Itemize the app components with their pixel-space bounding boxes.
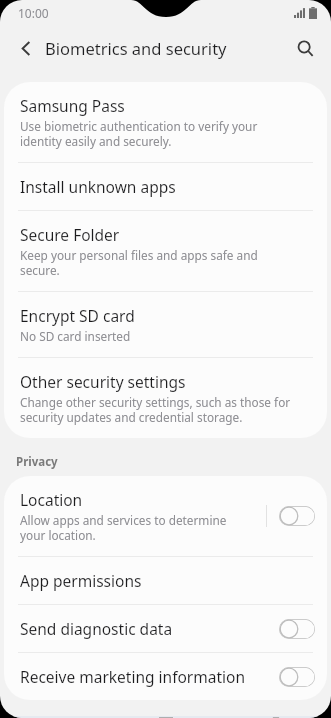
button[interactable]: Install unknown apps bbox=[4, 163, 327, 210]
button[interactable]: App permissions bbox=[4, 557, 327, 604]
button[interactable]: Receive marketing information bbox=[4, 653, 327, 700]
staticText: Secure Folder bbox=[20, 224, 120, 245]
button[interactable]: Toggle bbox=[279, 619, 315, 639]
button[interactable]: Send diagnostic data bbox=[4, 605, 327, 652]
staticText: Looking for something else? bbox=[20, 716, 219, 718]
staticText: Encrypt SD card bbox=[20, 305, 135, 326]
staticText: 10:00 bbox=[18, 5, 49, 21]
button[interactable]: Location bbox=[4, 476, 327, 556]
staticText: Use biometric authentication to verify y… bbox=[20, 118, 291, 149]
staticText: Privacy bbox=[16, 454, 58, 470]
staticText: Change other security settings, such as … bbox=[20, 394, 291, 425]
button[interactable]: Back bbox=[8, 30, 44, 66]
button[interactable]: Secure Folder bbox=[4, 211, 327, 291]
staticText: Receive marketing information bbox=[20, 666, 245, 687]
button[interactable]: Encrypt SD card bbox=[4, 292, 327, 357]
button[interactable]: Samsung Pass bbox=[4, 82, 327, 162]
staticText: Install unknown apps bbox=[20, 176, 176, 197]
staticText: Other security settings bbox=[20, 371, 186, 392]
staticText: Samsung Pass bbox=[20, 95, 125, 116]
button[interactable]: Other security settings bbox=[4, 358, 327, 438]
staticText: Allow apps and services to determine you… bbox=[20, 512, 246, 543]
button[interactable]: Search bbox=[287, 30, 323, 66]
button[interactable]: Toggle bbox=[279, 506, 315, 526]
staticText: Location bbox=[20, 489, 83, 510]
staticText: Biometrics and security bbox=[45, 37, 227, 59]
staticText: App permissions bbox=[20, 570, 142, 591]
staticText: Keep your personal files and apps safe a… bbox=[20, 247, 291, 278]
button[interactable]: Toggle bbox=[279, 667, 315, 687]
button[interactable]: Looking for something else? bbox=[4, 716, 327, 718]
staticText: No SD card inserted bbox=[20, 328, 291, 344]
staticText: Send diagnostic data bbox=[20, 618, 173, 639]
